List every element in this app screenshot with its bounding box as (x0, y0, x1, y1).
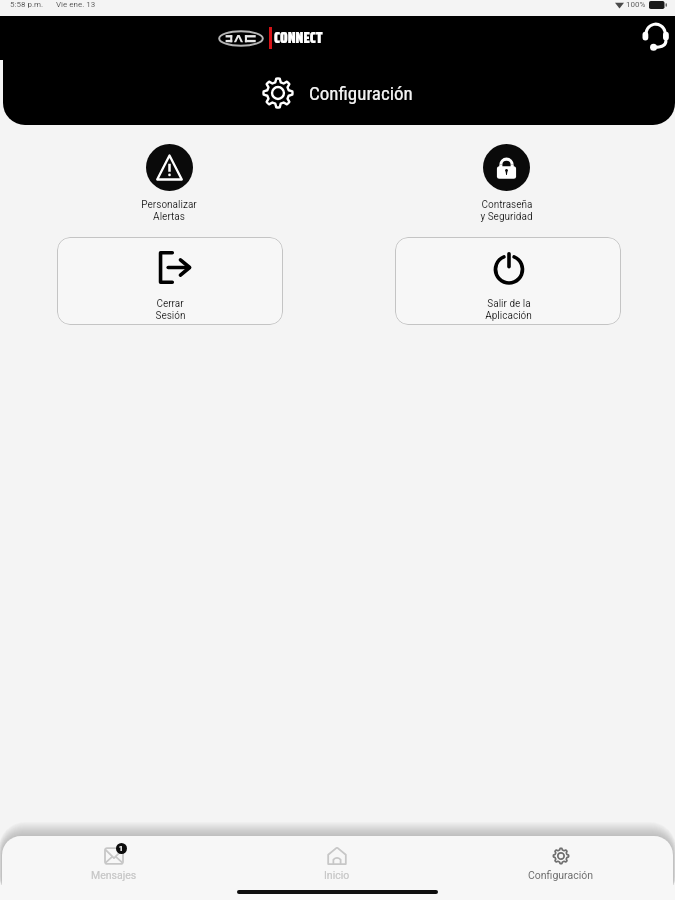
staticText: 1 (119, 845, 124, 853)
staticText: Personalizar (141, 199, 197, 211)
button[interactable]: 1 (2, 836, 225, 881)
staticText: Configuración (309, 82, 413, 104)
staticText: Sesión (155, 310, 186, 322)
button[interactable]: Contraseña (472, 142, 541, 225)
button[interactable]: Personalizar (133, 142, 205, 225)
staticText: Salir de la (487, 298, 531, 310)
staticText: y Seguridad (480, 211, 533, 223)
staticText: Vie ene. 13 (56, 0, 96, 9)
button[interactable]: Soporte (639, 23, 669, 53)
staticText: Alertas (153, 211, 185, 223)
staticText: 100% (626, 0, 646, 9)
staticText: CONNECT (274, 26, 323, 50)
staticText: 5:58 p.m. (10, 0, 44, 9)
staticText: Aplicación (485, 310, 532, 322)
staticText: Cerrar (156, 298, 184, 310)
staticText: Inicio (324, 869, 350, 881)
button[interactable]: Cerrar (57, 237, 283, 325)
button[interactable]: Configuración (449, 836, 673, 881)
staticText: Mensajes (91, 869, 137, 881)
button[interactable]: Inicio (225, 836, 449, 881)
staticText: Configuración (528, 869, 594, 881)
staticText: Contraseña (481, 199, 533, 211)
button[interactable]: Salir de la (395, 237, 621, 325)
